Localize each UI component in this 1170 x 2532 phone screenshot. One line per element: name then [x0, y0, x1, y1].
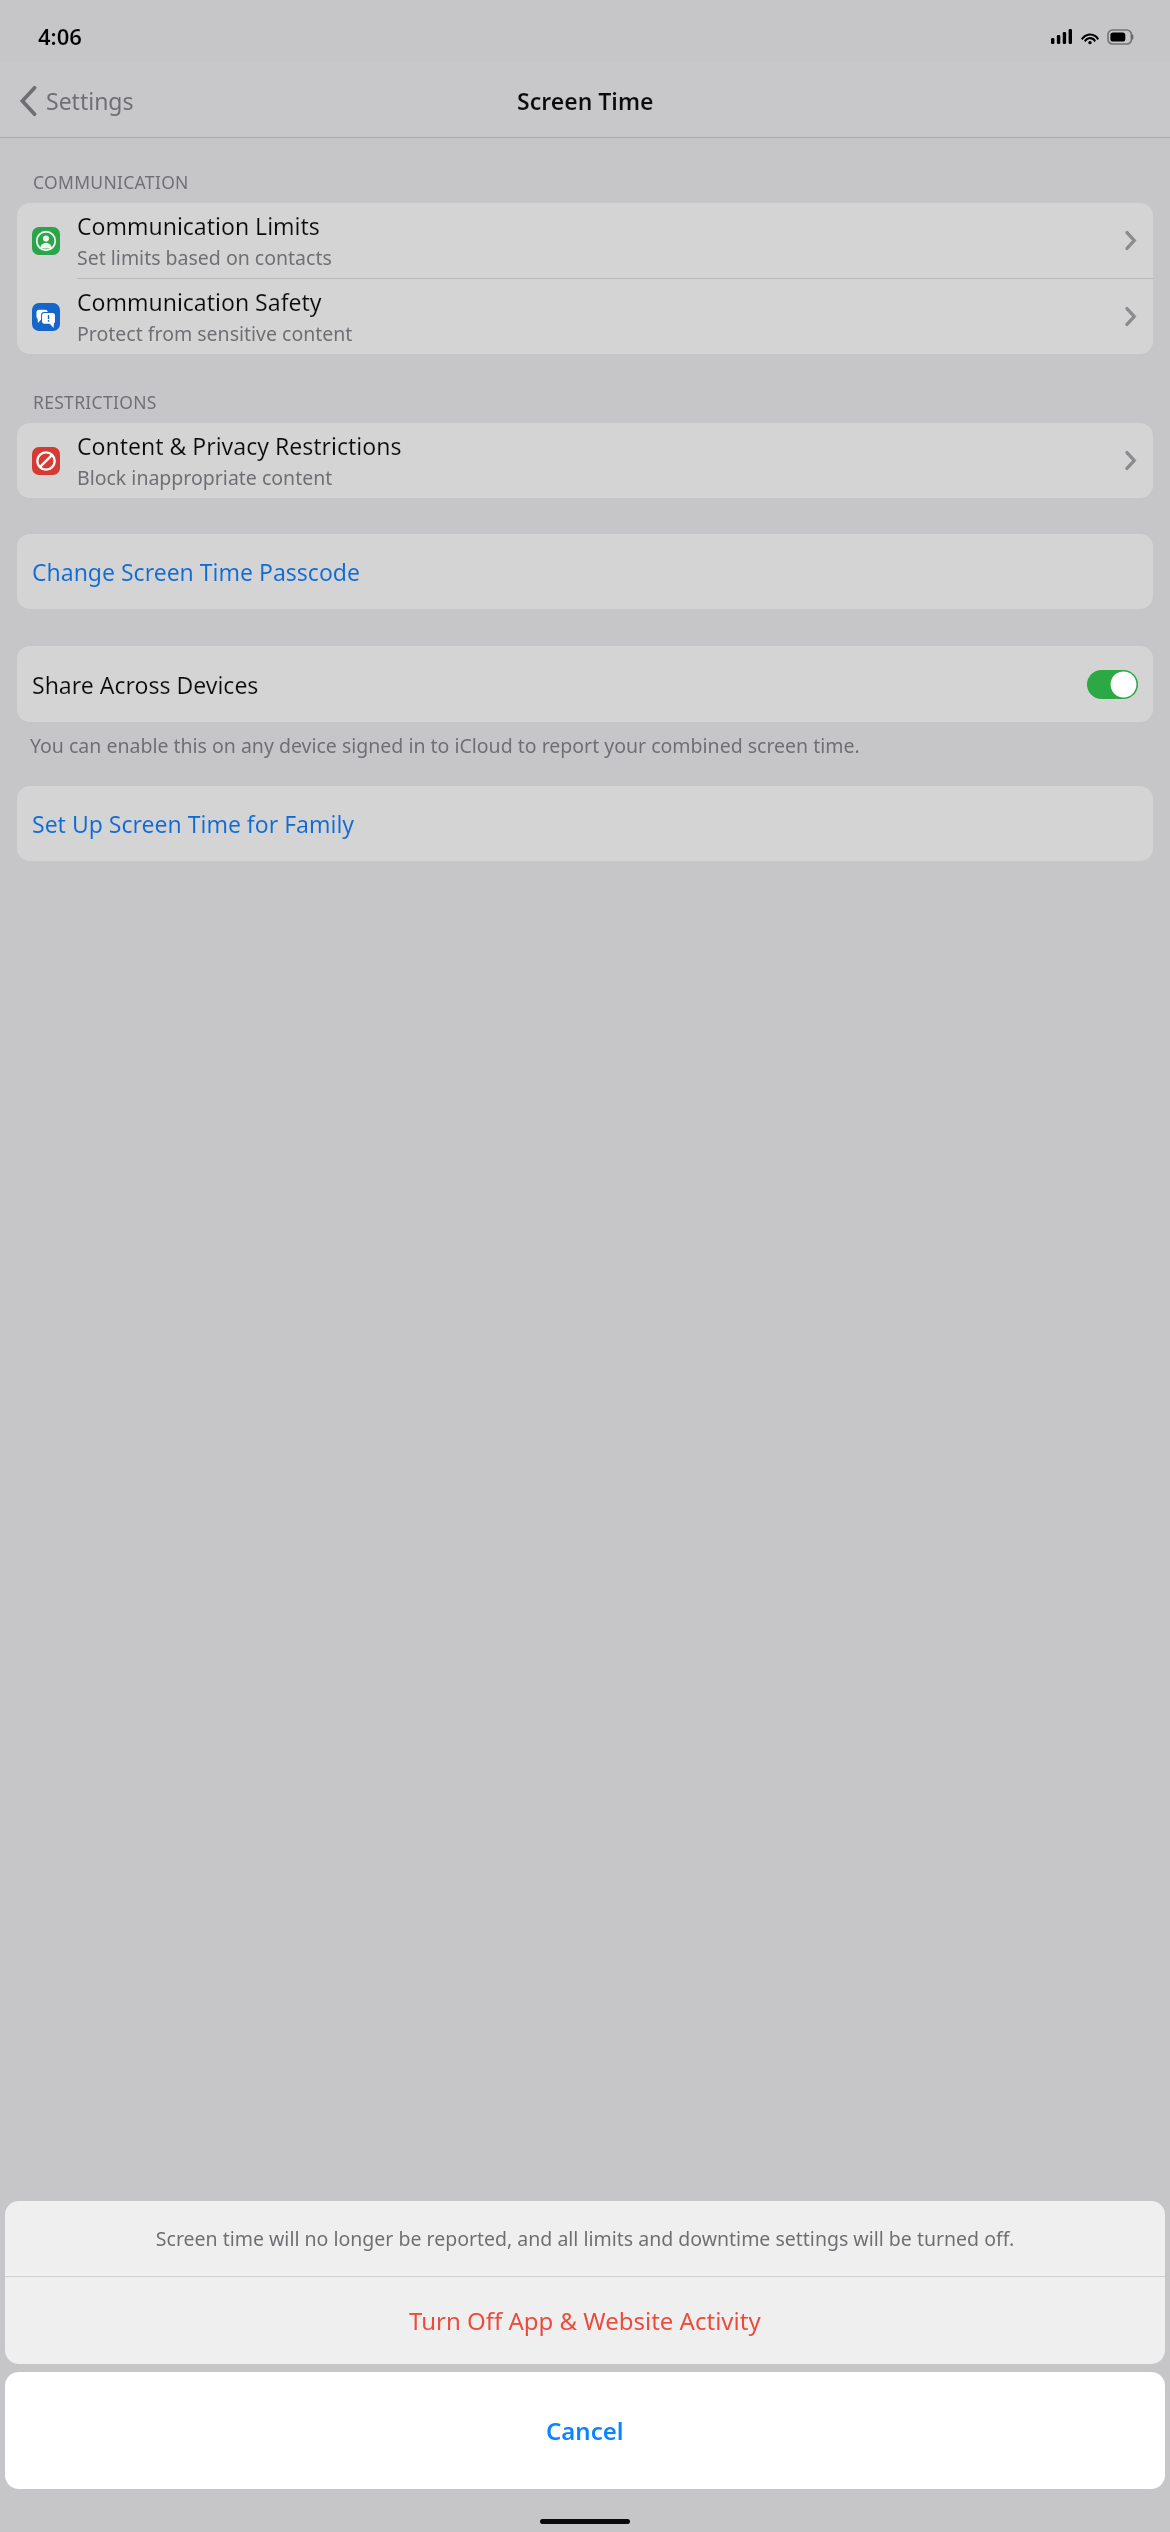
- staticText: Cancel: [546, 2414, 624, 2447]
- button[interactable]: Share Across Devices: [17, 646, 1153, 722]
- staticText: You can enable this on any device signed…: [30, 732, 860, 759]
- staticText: Content & Privacy Restrictions: [77, 430, 402, 461]
- staticText: Settings: [46, 85, 134, 116]
- staticText: Protect from sensitive content: [77, 320, 353, 347]
- button[interactable]: Set Up Screen Time for Family: [17, 786, 1153, 861]
- other: More: [1125, 231, 1136, 250]
- staticText: Communication Safety: [77, 286, 322, 317]
- staticText: Turn Off App & Website Activity: [409, 2304, 761, 2337]
- other: More: [1125, 451, 1136, 470]
- button[interactable]: Content & Privacy Restrictions: [17, 423, 1153, 498]
- staticText: 4:06: [38, 21, 82, 51]
- other: More: [1125, 307, 1136, 326]
- button[interactable]: Communication Safety: [17, 279, 1153, 354]
- staticText: Share Across Devices: [32, 669, 1087, 700]
- staticText: Set Up Screen Time for Family: [32, 808, 355, 839]
- staticText: Set limits based on contacts: [77, 244, 332, 271]
- staticText: COMMUNICATION: [33, 170, 189, 194]
- staticText: Block inappropriate content: [77, 464, 333, 491]
- button[interactable]: Communication Limits: [17, 203, 1153, 279]
- staticText: Screen Time: [517, 85, 654, 116]
- other: Share Across Devices toggle: [1087, 670, 1138, 699]
- staticText: Change Screen Time Passcode: [32, 556, 360, 587]
- staticText: Screen time will no longer be reported, …: [31, 2225, 1139, 2252]
- staticText: Communication Limits: [77, 210, 320, 241]
- button[interactable]: Settings: [12, 77, 142, 124]
- staticText: RESTRICTIONS: [33, 390, 157, 414]
- button[interactable]: Change Screen Time Passcode: [17, 534, 1153, 609]
- button[interactable]: Cancel: [5, 2372, 1165, 2489]
- button[interactable]: Turn Off App & Website Activity: [5, 2277, 1165, 2364]
